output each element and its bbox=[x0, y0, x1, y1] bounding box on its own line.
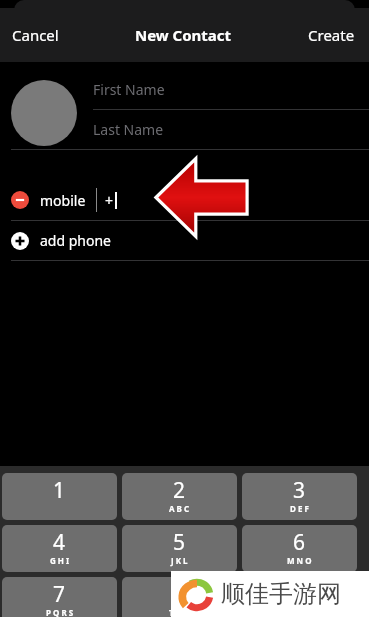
staticText: 6 bbox=[293, 528, 306, 557]
button[interactable]: 1 bbox=[2, 473, 117, 520]
staticText: G H I bbox=[50, 555, 70, 566]
button[interactable]: Create bbox=[296, 15, 369, 55]
staticText: mobile bbox=[40, 191, 86, 210]
button[interactable]: 6 bbox=[242, 525, 357, 572]
staticText: P Q R S bbox=[46, 607, 74, 617]
staticText: T U V bbox=[169, 607, 190, 617]
staticText: 4 bbox=[53, 528, 66, 557]
staticText: First Name bbox=[93, 80, 165, 99]
button[interactable]: 8 bbox=[122, 577, 237, 617]
button[interactable]: 2 bbox=[122, 473, 237, 520]
staticText: 3 bbox=[293, 476, 306, 505]
button[interactable]: Cancel bbox=[0, 15, 71, 55]
staticText: New Contact bbox=[135, 25, 232, 45]
button[interactable]: Add photo bbox=[11, 80, 77, 146]
staticText: D E F bbox=[290, 503, 309, 514]
staticText: 5 bbox=[173, 528, 186, 557]
button[interactable]: 3 bbox=[242, 473, 357, 520]
staticText: 8 bbox=[173, 580, 186, 609]
staticText: 1 bbox=[53, 476, 66, 505]
button[interactable]: 7 bbox=[2, 577, 117, 617]
staticText: add phone bbox=[40, 231, 111, 250]
staticText: 顺佳手游网 bbox=[221, 579, 341, 609]
button[interactable]: First Name bbox=[93, 70, 369, 109]
button[interactable]: 5 bbox=[122, 525, 237, 572]
staticText: 7 bbox=[53, 580, 66, 609]
staticText: M N O bbox=[287, 555, 312, 566]
staticText: + bbox=[105, 191, 114, 210]
staticText: J K L bbox=[171, 555, 188, 566]
button[interactable]: 9 bbox=[242, 577, 357, 617]
staticText: Last Name bbox=[93, 120, 164, 139]
staticText: Create bbox=[308, 25, 355, 45]
staticText: Cancel bbox=[12, 25, 59, 45]
staticText: 9 bbox=[293, 580, 306, 609]
other: Remove phone bbox=[11, 191, 29, 209]
button[interactable]: Last Name bbox=[93, 110, 369, 149]
button[interactable]: 4 bbox=[2, 525, 117, 572]
staticText: A B C bbox=[169, 503, 190, 514]
button[interactable]: Remove phone bbox=[0, 180, 369, 220]
staticText: 2 bbox=[173, 476, 186, 505]
button[interactable]: add phone bbox=[0, 221, 369, 260]
